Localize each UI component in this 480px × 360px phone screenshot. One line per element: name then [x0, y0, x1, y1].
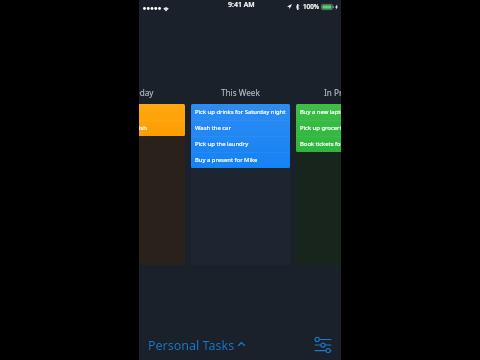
button[interactable]: Buy a present for Mike: [191, 152, 290, 168]
staticText: Someday: [139, 87, 154, 98]
button[interactable]: Pick up drinks for Saturday night: [191, 104, 290, 120]
staticText: Pick up drinks for Saturday night: [195, 108, 286, 116]
staticText: Book tickets for Paris: [300, 140, 341, 148]
button[interactable]: Wash the car: [191, 120, 290, 136]
button[interactable]: Pick up the laundry: [191, 136, 290, 152]
button[interactable]: Book tickets for Paris: [296, 136, 341, 152]
staticText: Buy a new laptop: [300, 108, 341, 116]
staticText: This Week: [221, 87, 260, 98]
button[interactable]: Call the plumber: [139, 104, 185, 120]
button[interactable]: Take out the rubbish: [139, 120, 185, 136]
staticText: Pick up the laundry: [195, 140, 249, 148]
staticText: 100%: [303, 2, 320, 11]
staticText: Pick up groceries: [300, 124, 341, 132]
button[interactable]: Pick up groceries: [296, 120, 341, 136]
staticText: 9:41 AM: [228, 0, 255, 10]
button[interactable]: Personal Tasks: [148, 337, 245, 354]
staticText: Buy a present for Mike: [195, 156, 258, 164]
staticText: Personal Tasks: [148, 337, 235, 354]
staticText: Wash the car: [195, 124, 231, 132]
button[interactable]: Buy a new laptop: [296, 104, 341, 120]
button[interactable]: Filter settings: [313, 334, 333, 354]
staticText: Take out the rubbish: [139, 124, 147, 132]
staticText: In Progress: [324, 87, 341, 98]
